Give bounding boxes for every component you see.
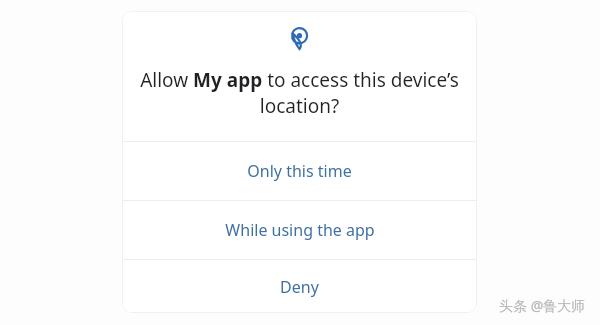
staticText: Only this time <box>247 160 352 182</box>
staticText: 头条 @鲁大师 <box>499 296 586 315</box>
staticText: While using the app <box>225 219 375 241</box>
button[interactable]: While using the app <box>122 201 477 259</box>
other: Location <box>290 27 309 50</box>
button[interactable]: Only this time <box>122 142 477 200</box>
staticText: Deny <box>280 276 319 298</box>
staticText: Allow My app to access this device’s loc… <box>140 67 459 119</box>
button[interactable]: Deny <box>122 260 477 313</box>
